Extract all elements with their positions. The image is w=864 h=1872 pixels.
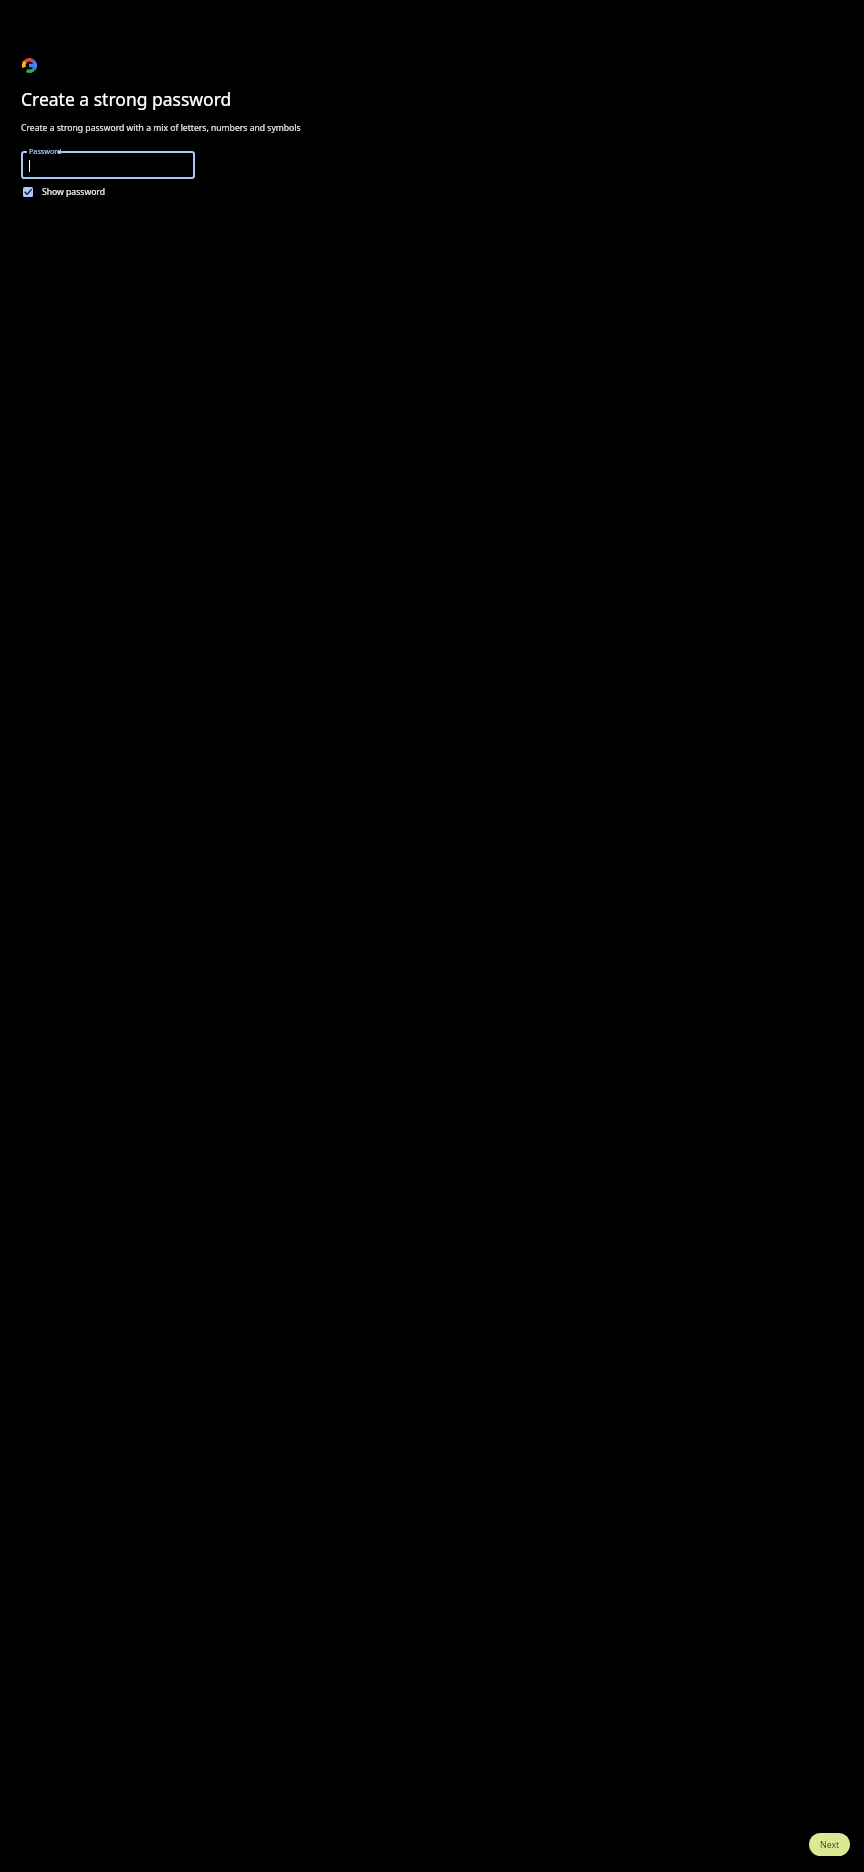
button[interactable]: Show password	[23, 186, 106, 198]
staticText: Next	[820, 1839, 840, 1851]
staticText: Show password	[42, 186, 106, 198]
staticText: Create a strong password with a mix of l…	[21, 122, 301, 134]
staticText: Password	[29, 146, 62, 156]
button[interactable]: Next	[809, 1833, 850, 1856]
button[interactable]: Password	[21, 151, 195, 179]
staticText: Create a strong password	[21, 87, 232, 111]
